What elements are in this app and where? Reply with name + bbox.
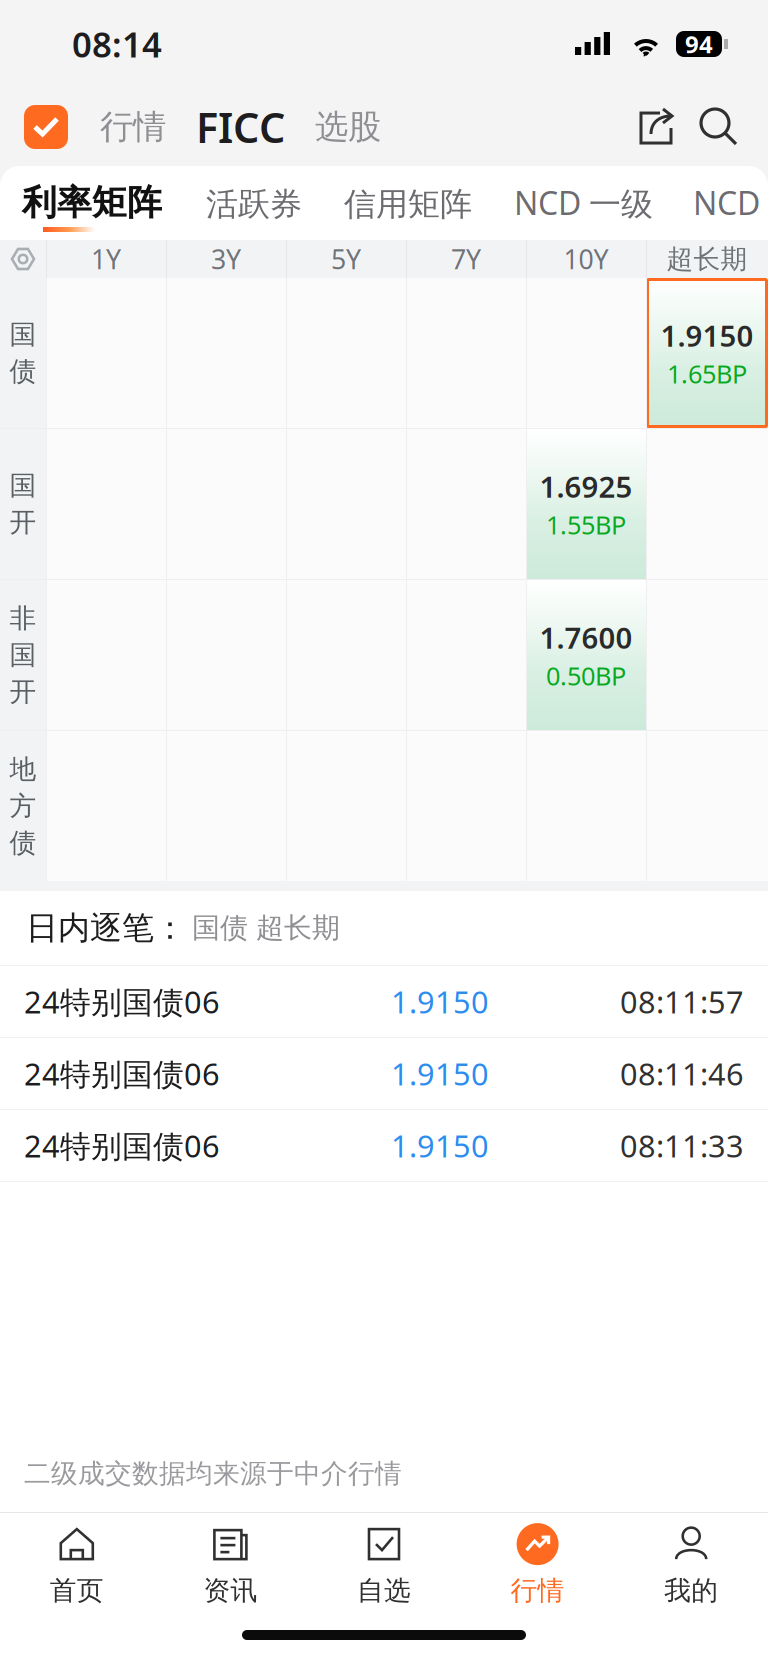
button[interactable]: 1.9150 bbox=[646, 278, 768, 428]
staticText: 3Y bbox=[211, 241, 241, 277]
staticText: 10Y bbox=[563, 241, 608, 277]
button[interactable]: NCD 一级 bbox=[472, 166, 653, 240]
staticText: 债 bbox=[9, 355, 36, 388]
button[interactable]: 24特别国债06 bbox=[0, 966, 768, 1038]
button[interactable]: 首页 bbox=[0, 1513, 154, 1617]
staticText: 国 bbox=[9, 639, 36, 671]
staticText: 利率矩阵 bbox=[22, 181, 162, 224]
staticText: 地 bbox=[9, 753, 36, 786]
button[interactable]: 1.7600 bbox=[526, 580, 646, 730]
staticText: 1.65BP bbox=[667, 357, 747, 391]
staticText: 1.55BP bbox=[546, 508, 626, 542]
button[interactable]: 资讯 bbox=[154, 1513, 307, 1617]
staticText: 行情 bbox=[511, 1574, 565, 1607]
staticText: 1.6925 bbox=[539, 467, 632, 506]
staticText: 超长期 bbox=[666, 243, 747, 275]
staticText: 1.9150 bbox=[660, 316, 753, 355]
staticText: 1.7600 bbox=[539, 618, 632, 657]
button[interactable]: 信用矩阵 bbox=[302, 166, 472, 240]
staticText: 94 bbox=[685, 28, 713, 60]
staticText: 08:14 bbox=[72, 21, 162, 67]
staticText: 7Y bbox=[451, 241, 481, 277]
staticText: 国 bbox=[9, 469, 36, 502]
staticText: 24特别国债06 bbox=[24, 1125, 220, 1166]
button[interactable]: 分享 bbox=[624, 97, 688, 157]
staticText: NCD 一级 bbox=[514, 181, 653, 224]
staticText: 1.9150 bbox=[391, 981, 489, 1022]
button[interactable]: 24特别国债06 bbox=[0, 1038, 768, 1110]
button[interactable]: 24特别国债06 bbox=[0, 1110, 768, 1182]
button[interactable]: 1.6925 bbox=[526, 429, 646, 579]
staticText: 5Y bbox=[331, 241, 361, 277]
button[interactable]: NCD 二 bbox=[653, 166, 768, 240]
button[interactable]: 自选 bbox=[24, 94, 68, 160]
staticText: 24特别国债06 bbox=[24, 1053, 220, 1094]
staticText: 开 bbox=[9, 506, 36, 539]
staticText: 首页 bbox=[50, 1574, 104, 1607]
staticText: 我的 bbox=[664, 1574, 718, 1607]
staticText: 08:11:57 bbox=[620, 981, 744, 1022]
staticText: 08:11:33 bbox=[620, 1125, 744, 1166]
button[interactable]: 行情 bbox=[461, 1513, 614, 1617]
staticText: NCD 二 bbox=[693, 181, 768, 224]
staticText: 自选 bbox=[357, 1574, 411, 1607]
staticText: 0.50BP bbox=[546, 659, 626, 693]
staticText: FICC bbox=[196, 100, 285, 154]
staticText: 08:11:46 bbox=[620, 1053, 744, 1094]
staticText: 二级成交数据均来源于中介行情 bbox=[24, 1457, 402, 1490]
staticText: 开 bbox=[9, 675, 36, 708]
staticText: 国债 超长期 bbox=[192, 911, 340, 945]
staticText: 行情 bbox=[100, 106, 166, 147]
button[interactable]: 活跃券 bbox=[162, 166, 302, 240]
staticText: 资讯 bbox=[203, 1574, 257, 1607]
staticText: 非 bbox=[9, 602, 36, 635]
staticText: 活跃券 bbox=[206, 185, 302, 224]
staticText: 1.9150 bbox=[391, 1053, 489, 1094]
staticText: 国 bbox=[9, 318, 36, 351]
button[interactable]: FICC bbox=[166, 94, 285, 160]
staticText: 1Y bbox=[91, 241, 121, 277]
button[interactable]: 行情 bbox=[68, 94, 166, 160]
staticText: 信用矩阵 bbox=[344, 185, 472, 224]
staticText: 日内逐笔： bbox=[26, 908, 186, 948]
button[interactable]: 自选 bbox=[307, 1513, 461, 1617]
button[interactable]: 搜索 bbox=[688, 97, 748, 157]
staticText: 方 bbox=[9, 790, 36, 822]
staticText: 1.9150 bbox=[391, 1125, 489, 1166]
staticText: 债 bbox=[9, 826, 36, 859]
staticText: 24特别国债06 bbox=[24, 981, 220, 1022]
button[interactable]: 利率矩阵 bbox=[0, 166, 162, 240]
button[interactable]: 选股 bbox=[285, 94, 381, 160]
button[interactable]: 我的 bbox=[614, 1513, 768, 1617]
staticText: 选股 bbox=[315, 106, 381, 147]
